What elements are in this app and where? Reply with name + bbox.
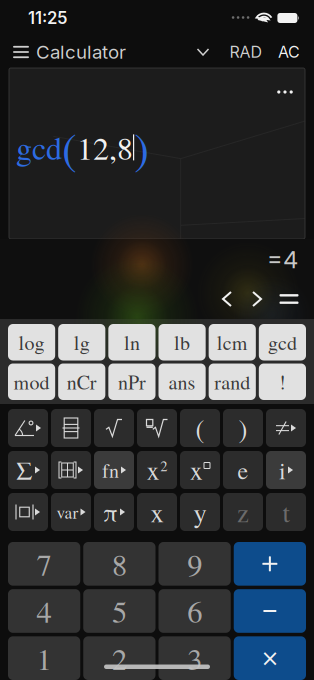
button[interactable]: (: [180, 409, 220, 447]
staticText: nCr: [67, 368, 97, 395]
button[interactable]: 6: [158, 589, 231, 633]
button[interactable]: !: [259, 363, 306, 400]
staticText: 2: [160, 456, 167, 475]
button[interactable]: x: [137, 493, 177, 531]
staticText: π: [103, 495, 118, 529]
staticText: 12,8: [77, 126, 133, 169]
staticText: ): [238, 410, 247, 446]
button[interactable]: AC: [272, 37, 306, 67]
button[interactable]: 8: [83, 542, 155, 586]
button[interactable]: Σ: [8, 451, 48, 489]
staticText: 2: [112, 638, 127, 679]
button[interactable]: [137, 409, 177, 447]
button[interactable]: Show more: [186, 37, 220, 67]
staticText: Calculator: [36, 41, 126, 63]
staticText: (: [62, 118, 77, 177]
button[interactable]: rand: [209, 363, 256, 400]
staticText: 4: [37, 590, 52, 631]
staticText: i: [279, 454, 286, 486]
button[interactable]: 4: [8, 589, 80, 633]
staticText: x: [190, 453, 203, 487]
staticText: ln: [124, 329, 140, 356]
button[interactable]: x: [180, 451, 220, 489]
staticText: x: [147, 453, 160, 487]
staticText: !: [279, 368, 286, 395]
button[interactable]: z: [223, 493, 263, 531]
staticText: gcd: [16, 126, 62, 169]
staticText: RAD: [229, 42, 262, 62]
button[interactable]: ×: [234, 636, 306, 680]
staticText: fn: [102, 457, 119, 483]
staticText: Σ: [16, 453, 33, 487]
staticText: AC: [278, 42, 300, 62]
button[interactable]: gcd: [259, 324, 306, 360]
button[interactable]: fn: [94, 451, 134, 489]
button[interactable]: e: [223, 451, 263, 489]
button[interactable]: 5: [83, 589, 155, 633]
staticText: 5: [112, 590, 127, 631]
staticText: 6: [187, 590, 202, 631]
button[interactable]: 3: [158, 636, 231, 680]
staticText: ): [134, 118, 149, 177]
button[interactable]: More options: [268, 79, 302, 105]
button[interactable]: nPr: [108, 363, 155, 400]
button[interactable]: [51, 409, 91, 447]
button[interactable]: lcm: [209, 324, 256, 360]
button[interactable]: [94, 409, 134, 447]
button[interactable]: Equals: [272, 285, 306, 313]
staticText: log: [19, 329, 45, 356]
button[interactable]: ans: [158, 363, 206, 400]
button[interactable]: RAD: [220, 37, 272, 67]
button[interactable]: 2: [83, 636, 155, 680]
staticText: ×: [260, 645, 279, 671]
button[interactable]: t: [266, 493, 306, 531]
staticText: lb: [174, 329, 190, 356]
button[interactable]: lb: [158, 324, 206, 360]
staticText: 9: [187, 543, 202, 584]
button[interactable]: i: [266, 451, 306, 489]
staticText: (: [195, 410, 204, 446]
staticText: lcm: [217, 329, 248, 356]
button[interactable]: [8, 409, 48, 447]
staticText: 11:25: [28, 8, 67, 28]
staticText: e: [237, 454, 248, 486]
staticText: 7: [37, 543, 52, 584]
staticText: =4: [267, 245, 298, 274]
staticText: z: [237, 494, 249, 530]
button[interactable]: ln: [108, 324, 155, 360]
button[interactable]: Next: [242, 285, 272, 313]
button[interactable]: 1: [8, 636, 80, 680]
staticText: ans: [169, 368, 196, 395]
button[interactable]: [234, 589, 306, 633]
staticText: x: [150, 494, 163, 530]
staticText: y: [193, 494, 206, 530]
staticText: 1: [37, 638, 52, 679]
button[interactable]: [51, 451, 91, 489]
staticText: 8: [112, 543, 127, 584]
staticText: gcd: [268, 329, 297, 356]
button[interactable]: log: [8, 324, 55, 360]
button[interactable]: [234, 542, 306, 586]
button[interactable]: var: [51, 493, 91, 531]
button[interactable]: x: [137, 451, 177, 489]
staticText: nPr: [118, 368, 146, 395]
button[interactable]: [8, 493, 48, 531]
staticText: t: [282, 494, 289, 530]
button[interactable]: y: [180, 493, 220, 531]
button[interactable]: ): [223, 409, 263, 447]
staticText: mod: [14, 368, 50, 395]
button[interactable]: mod: [8, 363, 55, 400]
staticText: 3: [187, 638, 202, 679]
staticText: lg: [74, 329, 90, 356]
button[interactable]: [266, 409, 306, 447]
button[interactable]: 9: [158, 542, 231, 586]
button[interactable]: π: [94, 493, 134, 531]
button[interactable]: lg: [58, 324, 105, 360]
button[interactable]: 7: [8, 542, 80, 586]
button[interactable]: Menu: [6, 37, 36, 67]
button[interactable]: nCr: [58, 363, 105, 400]
button[interactable]: Previous: [212, 285, 242, 313]
staticText: var: [56, 500, 78, 524]
staticText: rand: [214, 368, 250, 395]
